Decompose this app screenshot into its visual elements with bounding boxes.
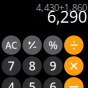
button[interactable]: 6 bbox=[43, 77, 63, 88]
button[interactable]: 7 bbox=[2, 56, 21, 76]
button[interactable]: 8 bbox=[22, 56, 42, 76]
staticText: 7 bbox=[8, 58, 15, 74]
button[interactable]: 5 bbox=[22, 77, 42, 88]
button[interactable]: % bbox=[43, 35, 63, 55]
button[interactable]: Minus bbox=[64, 77, 84, 88]
button[interactable]: 4 bbox=[2, 77, 21, 88]
staticText: 6 bbox=[49, 79, 56, 88]
staticText: 5 bbox=[29, 79, 36, 88]
button[interactable]: Divide bbox=[64, 35, 84, 55]
staticText: 9 bbox=[49, 58, 56, 74]
staticText: 4 bbox=[8, 79, 15, 88]
staticText: 6,290 bbox=[47, 6, 87, 27]
staticText: AC bbox=[5, 39, 17, 51]
button[interactable]: Plus minus bbox=[22, 35, 42, 55]
staticText: 8 bbox=[29, 58, 36, 74]
button[interactable]: Multiply bbox=[64, 56, 84, 76]
staticText: 4,430+1,860 bbox=[36, 1, 87, 13]
button[interactable]: AC bbox=[2, 35, 21, 55]
button[interactable]: 9 bbox=[43, 56, 63, 76]
staticText: % bbox=[48, 38, 57, 52]
